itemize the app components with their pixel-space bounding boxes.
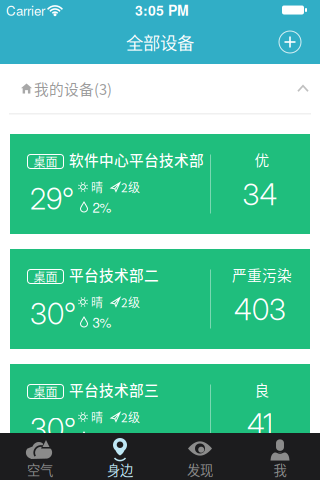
staticText: 桌面 <box>33 153 57 170</box>
staticText: 桌面 <box>33 383 57 400</box>
staticText: 2% <box>92 197 111 217</box>
staticText: 2级 <box>121 293 140 311</box>
staticText: 平台技术部三 <box>69 379 159 400</box>
staticText: 身边 <box>107 460 133 479</box>
staticText: 2% <box>92 427 111 447</box>
button[interactable]: 桌面 <box>10 134 310 234</box>
staticText: 41 <box>247 407 273 442</box>
staticText: 桌面 <box>33 268 57 285</box>
staticText: 30° <box>30 296 76 332</box>
button[interactable]: 桌面 <box>10 249 310 349</box>
staticText: 优 <box>254 149 269 170</box>
button[interactable]: Nearby <box>80 433 160 480</box>
staticText: 2级 <box>121 178 140 196</box>
staticText: 全部设备 <box>126 29 194 55</box>
button[interactable]: Discover <box>160 433 240 480</box>
staticText: 良 <box>254 379 269 400</box>
staticText: 空气 <box>27 460 53 479</box>
button[interactable]: 我的设备(3) <box>0 64 320 113</box>
staticText: 29° <box>30 181 74 217</box>
staticText: 我 <box>273 460 286 479</box>
staticText: 软件中心平台技术部 <box>69 149 204 170</box>
staticText: 晴 <box>91 408 103 426</box>
staticText: 平台技术部二 <box>69 264 159 285</box>
button[interactable]: Add device <box>275 27 305 57</box>
staticText: 30° <box>30 411 76 447</box>
staticText: 3% <box>92 312 111 332</box>
staticText: 34 <box>242 177 277 212</box>
staticText: 严重污染 <box>232 264 292 285</box>
button[interactable]: Me <box>240 433 320 480</box>
staticText: 我的设备(3) <box>34 78 112 99</box>
button[interactable]: 桌面 <box>10 364 310 464</box>
staticText: 发现 <box>187 460 213 479</box>
button[interactable]: Air <box>0 433 80 480</box>
staticText: Carrier <box>6 0 45 20</box>
staticText: 晴 <box>91 293 103 311</box>
staticText: 晴 <box>91 178 103 196</box>
staticText: 3:05 PM <box>135 0 189 20</box>
staticText: 2级 <box>121 408 140 426</box>
staticText: 403 <box>234 292 286 327</box>
